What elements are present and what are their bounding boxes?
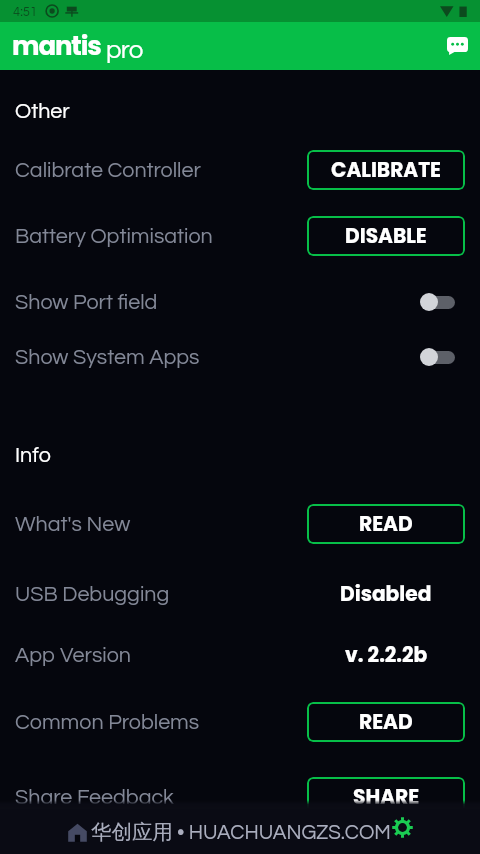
button[interactable]: App Version (0, 633, 480, 677)
staticText: Calibrate Controller (15, 159, 307, 181)
staticText: CALIBRATE (331, 156, 442, 184)
staticText: Show Port field (15, 291, 307, 313)
button[interactable]: Show Port field (0, 285, 480, 319)
staticText: App Version (15, 644, 307, 666)
staticText: 华创应用 • HUACHUANGZS.COM (91, 819, 391, 845)
staticText: READ (359, 708, 413, 736)
staticText: Info (15, 444, 51, 466)
staticText: Show System Apps (15, 346, 307, 368)
staticText: 4:51 (13, 5, 38, 18)
button[interactable]: DISABLE (307, 216, 465, 256)
staticText: USB Debugging (15, 583, 307, 605)
staticText: Common Problems (15, 711, 307, 733)
button[interactable]: Battery Optimisation (0, 214, 480, 258)
button[interactable]: Share Feedback (0, 775, 480, 819)
button[interactable]: READ (307, 702, 465, 742)
staticText: mantis (12, 28, 101, 64)
button[interactable]: Show System Apps (0, 340, 480, 374)
staticText: pro (106, 37, 143, 64)
staticText: READ (359, 510, 413, 538)
staticText: DISABLE (345, 222, 427, 250)
button[interactable]: Calibrate Controller (0, 148, 480, 192)
button[interactable]: USB Debugging (0, 572, 480, 616)
button[interactable]: Toggle (411, 285, 465, 319)
button[interactable]: Common Problems (0, 700, 480, 744)
staticText: Share Feedback (15, 786, 307, 808)
button[interactable]: Chat support (437, 26, 477, 66)
staticText: What's New (15, 513, 307, 535)
staticText: Other (15, 100, 70, 122)
staticText: v. 2.2.2b (345, 641, 428, 669)
staticText: SHARE (353, 783, 420, 811)
button[interactable]: Toggle (411, 340, 465, 374)
button[interactable]: SHARE (307, 777, 465, 817)
staticText: Disabled (340, 580, 432, 608)
button[interactable]: What's New (0, 502, 480, 546)
button[interactable]: READ (307, 504, 465, 544)
staticText: Battery Optimisation (15, 225, 307, 247)
button[interactable]: CALIBRATE (307, 150, 465, 190)
